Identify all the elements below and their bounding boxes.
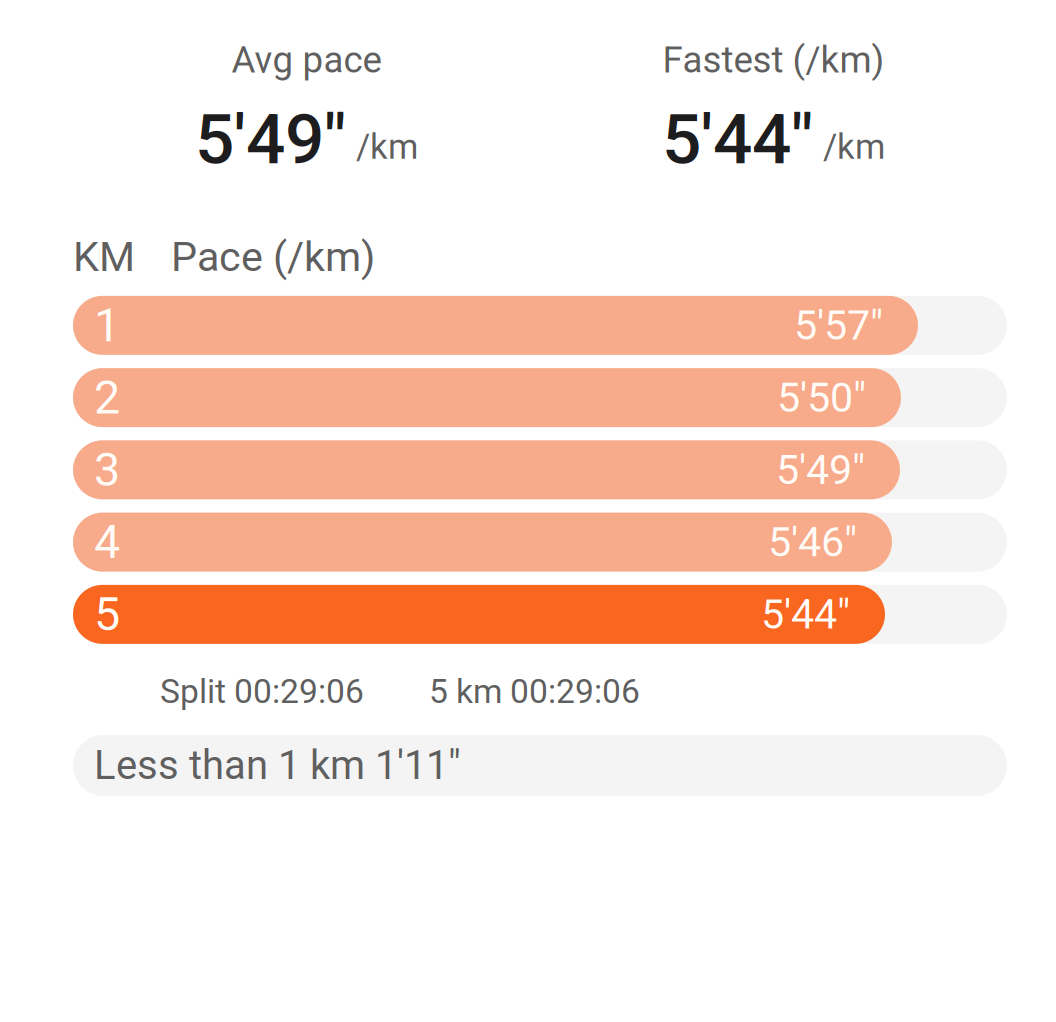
staticText: Split 00:29:06 xyxy=(160,672,364,711)
button[interactable]: Less than 1 km 1'11" xyxy=(73,735,1007,796)
staticText: 2 xyxy=(94,370,120,425)
staticText: 5'57" xyxy=(794,301,883,349)
staticText: 5'44" xyxy=(662,99,813,180)
button[interactable]: 3 xyxy=(73,440,1007,499)
staticText: 1 xyxy=(94,298,120,353)
staticText: Pace (/km) xyxy=(171,233,375,281)
staticText: 5 km 00:29:06 xyxy=(429,672,640,711)
staticText: 5'46" xyxy=(768,518,857,566)
staticText: /km xyxy=(823,127,885,167)
button[interactable]: 4 xyxy=(73,513,1007,572)
staticText: 3 xyxy=(94,442,120,497)
staticText: /km xyxy=(356,127,418,167)
staticText: Less than 1 km 1'11" xyxy=(94,742,461,789)
staticText: Fastest (/km) xyxy=(662,39,884,82)
button[interactable]: 2 xyxy=(73,368,1007,427)
staticText: 5'49" xyxy=(776,446,865,494)
staticText: 5'44" xyxy=(761,590,850,638)
button[interactable]: 1 xyxy=(73,296,1007,355)
staticText: 4 xyxy=(94,515,120,569)
staticText: Avg pace xyxy=(231,39,381,82)
button[interactable]: 5 xyxy=(73,585,1007,644)
staticText: KM xyxy=(73,233,135,281)
staticText: 5'49" xyxy=(195,99,346,180)
staticText: 5 xyxy=(94,587,120,642)
staticText: 5'50" xyxy=(777,373,866,422)
